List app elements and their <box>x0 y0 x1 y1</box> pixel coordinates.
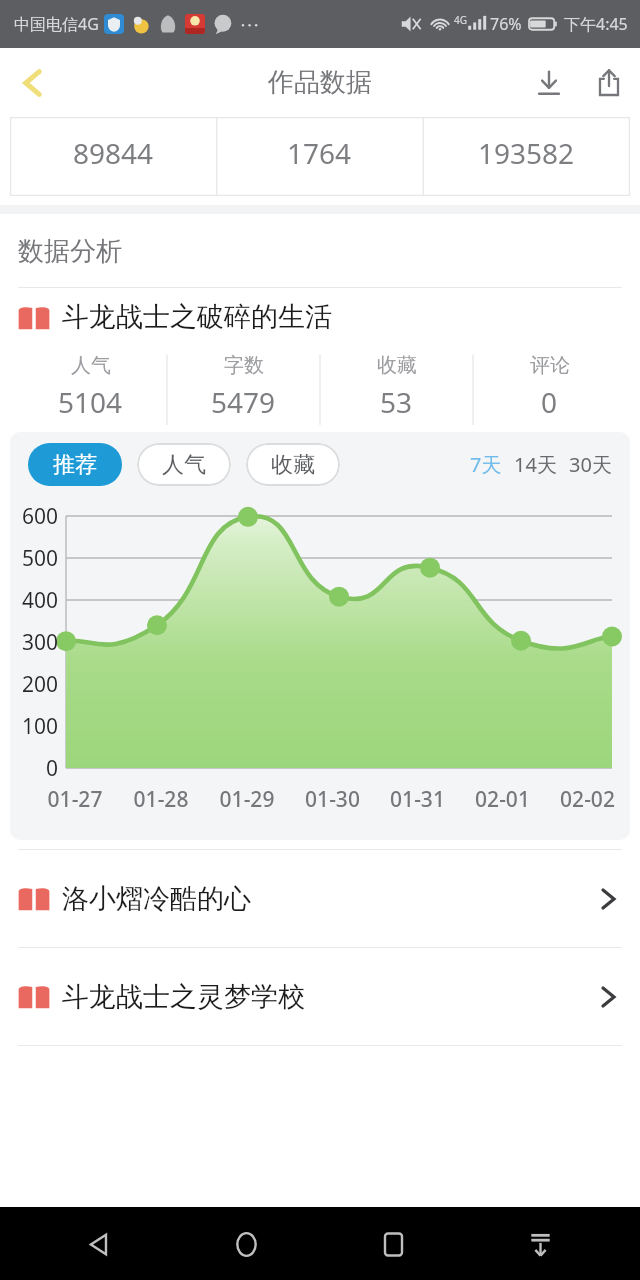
button[interactable]: 7天 <box>468 443 504 486</box>
staticText: 字数 <box>224 353 264 378</box>
staticText: 02-02 <box>545 785 630 814</box>
staticText: 收藏 <box>271 451 315 479</box>
staticText: 斗龙战士之灵梦学校 <box>62 980 305 1014</box>
staticText: 53 <box>380 383 413 421</box>
staticText: 0 <box>541 383 558 421</box>
button[interactable]: 推荐 <box>28 443 122 486</box>
staticText: 01-31 <box>375 785 460 814</box>
button[interactable]: Download <box>520 48 578 117</box>
staticText: 193582 <box>478 134 575 172</box>
staticText: 5104 <box>58 383 123 421</box>
staticText: 评论 <box>530 353 570 378</box>
staticText: 收藏 <box>377 353 417 378</box>
staticText: 4G <box>454 13 467 27</box>
staticText: 30天 <box>569 451 612 478</box>
staticText: 200 <box>10 670 58 699</box>
staticText: 300 <box>10 628 58 657</box>
button[interactable]: 人气 <box>137 443 231 486</box>
button[interactable]: 斗龙战士之灵梦学校 <box>0 948 640 1045</box>
staticText: 数据分析 <box>18 235 122 268</box>
staticText: 01-27 <box>32 785 118 814</box>
staticText: 作品数据 <box>268 66 372 99</box>
staticText: 14天 <box>514 451 557 478</box>
staticText: 下午4:45 <box>564 13 628 35</box>
button[interactable]: Home <box>211 1209 281 1279</box>
staticText: 5479 <box>211 383 276 421</box>
staticText: 500 <box>10 544 58 573</box>
staticText: 洛小熠冷酷的心 <box>62 882 251 916</box>
button[interactable]: 收藏 <box>246 443 340 486</box>
button[interactable]: 1764 <box>216 117 423 196</box>
staticText: 人气 <box>71 353 111 378</box>
button[interactable]: 30天 <box>567 443 614 486</box>
staticText: 斗龙战士之破碎的生活 <box>62 300 332 334</box>
staticText: 02-01 <box>460 785 545 814</box>
button[interactable]: 193582 <box>423 117 630 196</box>
staticText: 76% <box>490 13 522 35</box>
button[interactable]: 斗龙战士之破碎的生活 <box>0 288 640 346</box>
staticText: 01-30 <box>290 785 375 814</box>
staticText: 0 <box>10 754 58 783</box>
staticText: 01-29 <box>204 785 290 814</box>
staticText: 7天 <box>470 451 502 478</box>
staticText: 100 <box>10 712 58 741</box>
button[interactable]: 洛小熠冷酷的心 <box>0 850 640 947</box>
button[interactable]: Back <box>0 48 66 117</box>
staticText: 400 <box>10 586 58 615</box>
button[interactable]: 字数 <box>167 346 320 432</box>
button[interactable]: 收藏 <box>320 346 473 432</box>
button[interactable]: Back <box>64 1209 134 1279</box>
button[interactable]: Share <box>578 48 640 117</box>
staticText: 600 <box>10 502 58 531</box>
button[interactable]: 14天 <box>512 443 559 486</box>
staticText: 89844 <box>73 134 154 172</box>
staticText: 中国电信4G <box>14 13 99 35</box>
staticText: 推荐 <box>53 451 97 479</box>
staticText: 1764 <box>287 134 352 172</box>
staticText: 01-28 <box>118 785 204 814</box>
button[interactable]: Hide navigation bar <box>505 1209 575 1279</box>
button[interactable]: 评论 <box>473 346 626 432</box>
button[interactable]: 89844 <box>10 117 216 196</box>
button[interactable]: Recents <box>358 1209 428 1279</box>
button[interactable]: 人气 <box>14 346 167 432</box>
staticText: 人气 <box>162 451 206 479</box>
